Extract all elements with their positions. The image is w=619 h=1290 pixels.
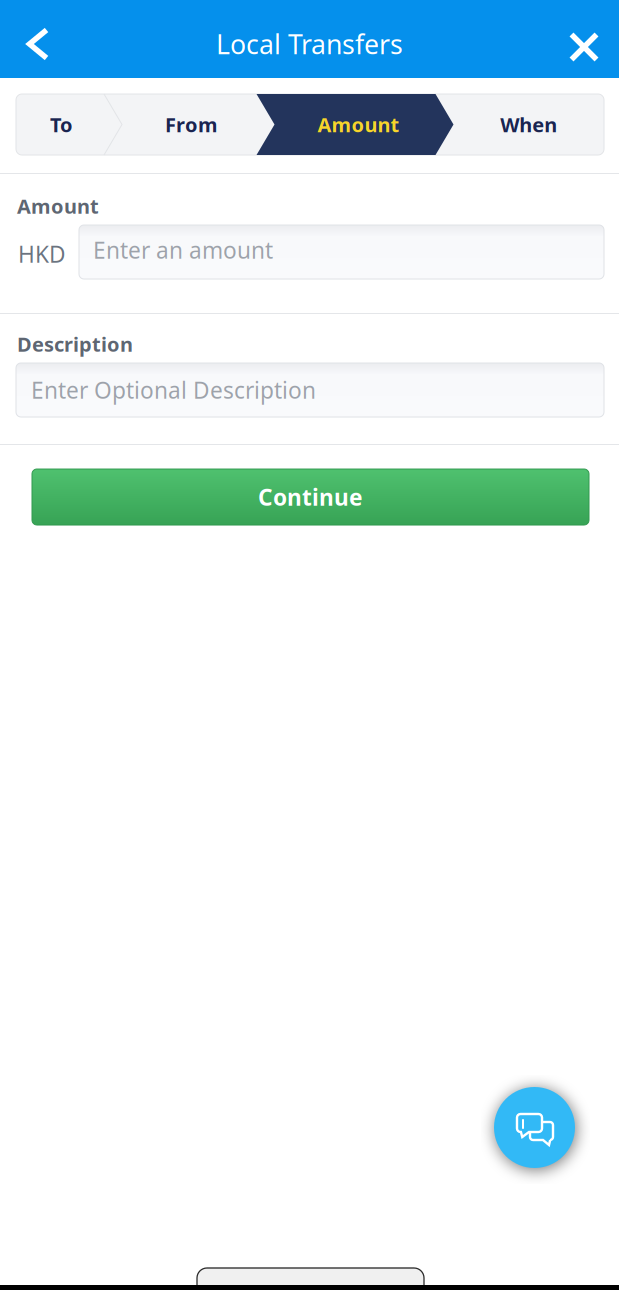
button[interactable]: Chat with us — [494, 1087, 575, 1168]
staticText: To — [50, 111, 73, 138]
button[interactable]: Enter Optional Description — [16, 363, 604, 417]
button[interactable]: When — [453, 94, 604, 155]
staticText: Description — [17, 331, 133, 357]
button[interactable]: To — [16, 94, 107, 155]
staticText: Amount — [317, 111, 399, 138]
staticText: Enter Optional Description — [31, 375, 316, 405]
button[interactable]: Close — [548, 8, 619, 86]
button[interactable]: Amount — [269, 94, 448, 155]
staticText: From — [165, 111, 218, 138]
staticText: When — [500, 111, 557, 138]
staticText: Local Transfers — [216, 26, 403, 62]
button[interactable]: Back — [2, 5, 74, 83]
button[interactable]: Continue — [32, 469, 589, 525]
staticText: HKD — [18, 239, 66, 269]
staticText: Continue — [258, 482, 363, 512]
button[interactable]: From — [113, 94, 270, 155]
staticText: Amount — [17, 193, 99, 219]
staticText: Enter an amount — [93, 235, 273, 265]
button[interactable]: Enter an amount — [79, 225, 604, 279]
